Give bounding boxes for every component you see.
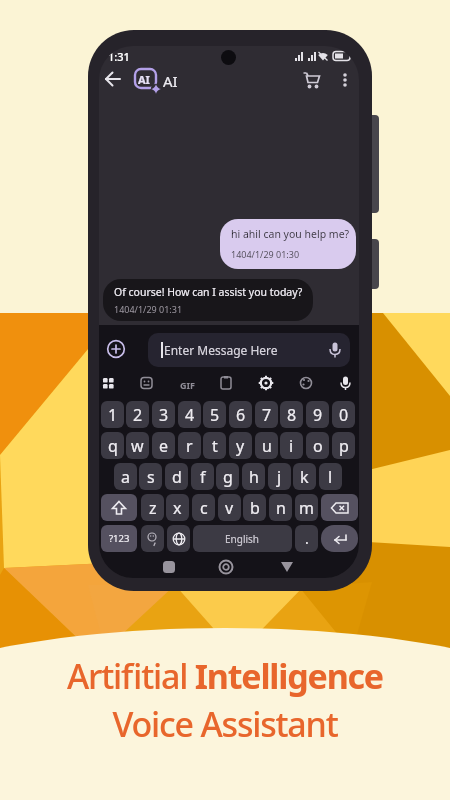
button[interactable]: o — [306, 432, 329, 459]
staticText: e — [159, 435, 169, 457]
staticText: p — [339, 435, 349, 457]
button[interactable]: English — [193, 525, 292, 552]
staticText: . — [305, 529, 309, 548]
button[interactable]: 6 — [229, 401, 252, 428]
button[interactable]: 3 — [152, 401, 175, 428]
staticText: c — [200, 497, 208, 519]
staticText: f — [200, 466, 206, 488]
staticText: 1:31 — [108, 49, 130, 64]
staticText: s — [147, 466, 155, 488]
button[interactable] — [321, 494, 358, 521]
button[interactable]: Enter Message Here — [148, 333, 350, 367]
staticText: GIF — [180, 379, 195, 391]
staticText: b — [250, 497, 260, 519]
staticText: 5 — [210, 404, 220, 426]
button[interactable] — [341, 70, 349, 90]
button[interactable]: 1 — [101, 401, 124, 428]
staticText: r — [186, 435, 193, 457]
staticText: 1404/1/29 01:30 — [231, 248, 300, 260]
staticText: n — [276, 497, 286, 519]
staticText: English — [225, 532, 260, 546]
staticText: AI — [163, 71, 178, 91]
staticText: m — [299, 497, 314, 519]
staticText: Artifitial Intelligence — [67, 653, 383, 699]
button[interactable]: x — [166, 494, 189, 521]
button[interactable]: m — [295, 494, 318, 521]
staticText: l — [328, 466, 333, 488]
staticText: Of course! How can I assist you today? — [114, 285, 303, 299]
staticText: a — [121, 466, 130, 488]
button[interactable]: a — [114, 463, 137, 490]
button[interactable]: v — [218, 494, 241, 521]
staticText: o — [313, 435, 323, 457]
staticText: q — [108, 435, 118, 457]
button[interactable]: g — [216, 463, 239, 490]
button[interactable]: t — [203, 432, 226, 459]
staticText: 7 — [262, 404, 272, 426]
staticText: g — [223, 466, 233, 488]
staticText: 1 — [108, 404, 118, 426]
button[interactable]: r — [178, 432, 201, 459]
staticText: 1404/1/29 01:31 — [114, 303, 183, 315]
button[interactable] — [101, 494, 137, 521]
button[interactable]: 8 — [280, 401, 303, 428]
button[interactable]: j — [268, 463, 291, 490]
staticText: 8 — [287, 404, 297, 426]
staticText: 6 — [236, 404, 246, 426]
button[interactable]: i — [280, 432, 303, 459]
button[interactable]: 4 — [178, 401, 201, 428]
staticText: w — [131, 435, 144, 457]
button[interactable]: h — [242, 463, 265, 490]
button[interactable]: b — [243, 494, 266, 521]
staticText: i — [289, 435, 294, 457]
button[interactable]: l — [319, 463, 342, 490]
staticText: 0 — [339, 404, 349, 426]
button[interactable]: . — [295, 525, 318, 552]
staticText: Voice Assistant — [112, 701, 338, 747]
button[interactable]: c — [192, 494, 215, 521]
button[interactable] — [321, 525, 358, 552]
staticText: 9 — [313, 404, 323, 426]
button[interactable]: e — [152, 432, 175, 459]
button[interactable] — [106, 339, 126, 359]
staticText: h — [249, 466, 259, 488]
staticText: u — [262, 435, 272, 457]
button[interactable]: ?123 — [101, 525, 137, 552]
staticText: 3 — [159, 404, 169, 426]
staticText: Enter Message Here — [164, 342, 278, 358]
button[interactable] — [104, 70, 122, 88]
button[interactable]: 7 — [255, 401, 278, 428]
button[interactable]: s — [139, 463, 162, 490]
staticText: AI — [138, 72, 150, 87]
button[interactable]: 5 — [203, 401, 226, 428]
staticText: k — [300, 466, 309, 488]
staticText: j — [277, 466, 282, 488]
button[interactable] — [167, 525, 190, 552]
button[interactable] — [141, 525, 164, 552]
staticText: z — [149, 497, 157, 519]
button[interactable]: p — [332, 432, 355, 459]
staticText: ?123 — [109, 532, 130, 545]
button[interactable]: y — [229, 432, 252, 459]
button[interactable]: q — [101, 432, 124, 459]
staticText: y — [236, 435, 245, 457]
staticText: x — [173, 497, 182, 519]
button[interactable]: f — [191, 463, 214, 490]
staticText: v — [225, 497, 234, 519]
button[interactable]: w — [126, 432, 149, 459]
staticText: d — [172, 466, 182, 488]
button[interactable] — [302, 70, 322, 90]
button[interactable]: 2 — [126, 401, 149, 428]
staticText: 2 — [133, 404, 143, 426]
button[interactable]: 0 — [332, 401, 355, 428]
button[interactable]: u — [255, 432, 278, 459]
staticText: hi ahil can you help me? — [231, 227, 350, 241]
button[interactable]: z — [141, 494, 164, 521]
staticText: 4 — [185, 404, 195, 426]
button[interactable]: 9 — [306, 401, 329, 428]
staticText: t — [212, 435, 218, 457]
button[interactable]: n — [269, 494, 292, 521]
button[interactable]: d — [165, 463, 188, 490]
button[interactable]: k — [293, 463, 316, 490]
